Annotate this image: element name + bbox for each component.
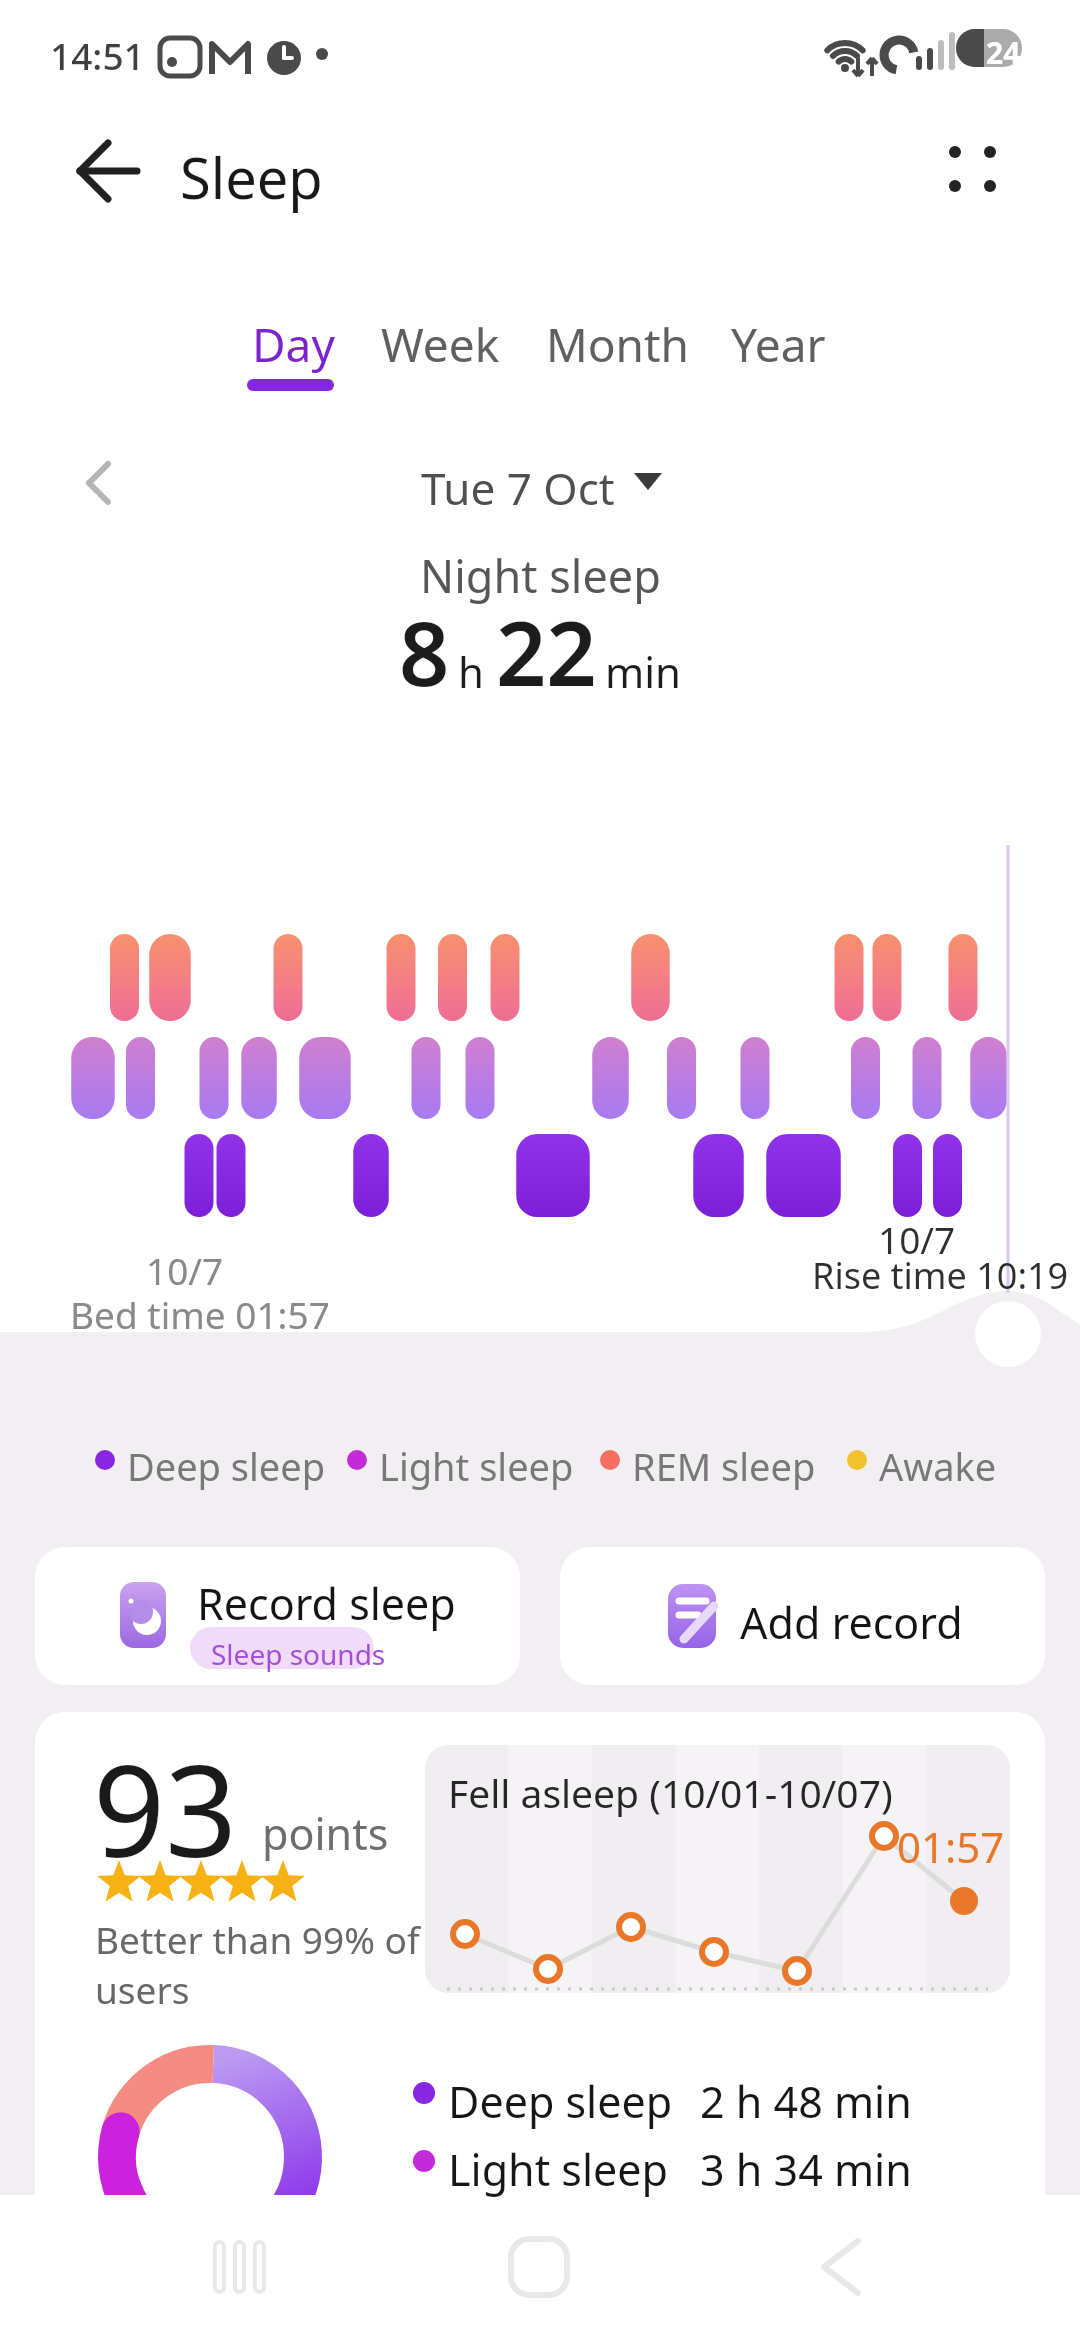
staticText: min <box>605 643 682 700</box>
staticText: Month <box>546 313 690 376</box>
staticText: 22 <box>496 592 597 712</box>
staticText: REM sleep <box>632 1440 816 1492</box>
staticText: Light sleep <box>379 1440 574 1492</box>
staticText: Night sleep <box>420 545 661 606</box>
staticText: Week <box>381 313 500 376</box>
staticText: Rise time 10:19 <box>812 1251 1069 1300</box>
staticText: points <box>262 1804 389 1863</box>
staticText: Bed time 01:57 <box>70 1289 330 1339</box>
staticText: Day <box>252 313 335 376</box>
staticText: Sleep <box>180 139 323 215</box>
staticText: Deep sleep <box>127 1440 326 1492</box>
staticText: 14:51 <box>50 30 145 80</box>
staticText: 3 h 34 min <box>700 2140 912 2199</box>
staticText: Better than 99% of <box>95 1914 420 1964</box>
staticText: users <box>95 1964 190 2014</box>
staticText: Year <box>731 313 826 376</box>
staticText: Add record <box>740 1593 963 1652</box>
staticText: Tue 7 Oct <box>421 458 615 518</box>
staticText: Fell asleep (10/01-10/07) <box>448 1766 893 1819</box>
staticText: h <box>458 643 484 700</box>
staticText: 24 <box>986 32 1021 73</box>
staticText: Light sleep <box>448 2140 668 2199</box>
staticText: 2 h 48 min <box>700 2072 912 2131</box>
staticText: 10/7 <box>146 1245 224 1295</box>
staticText: 10/7 <box>878 1214 956 1264</box>
staticText: 8 <box>399 592 450 712</box>
staticText: 01:57 <box>897 1818 1005 1875</box>
staticText: Record sleep <box>197 1574 456 1633</box>
staticText: Deep sleep <box>448 2072 673 2131</box>
staticText: Awake <box>879 1440 997 1492</box>
staticText: 93 <box>93 1722 238 1894</box>
staticText: Sleep sounds <box>211 1635 386 1673</box>
